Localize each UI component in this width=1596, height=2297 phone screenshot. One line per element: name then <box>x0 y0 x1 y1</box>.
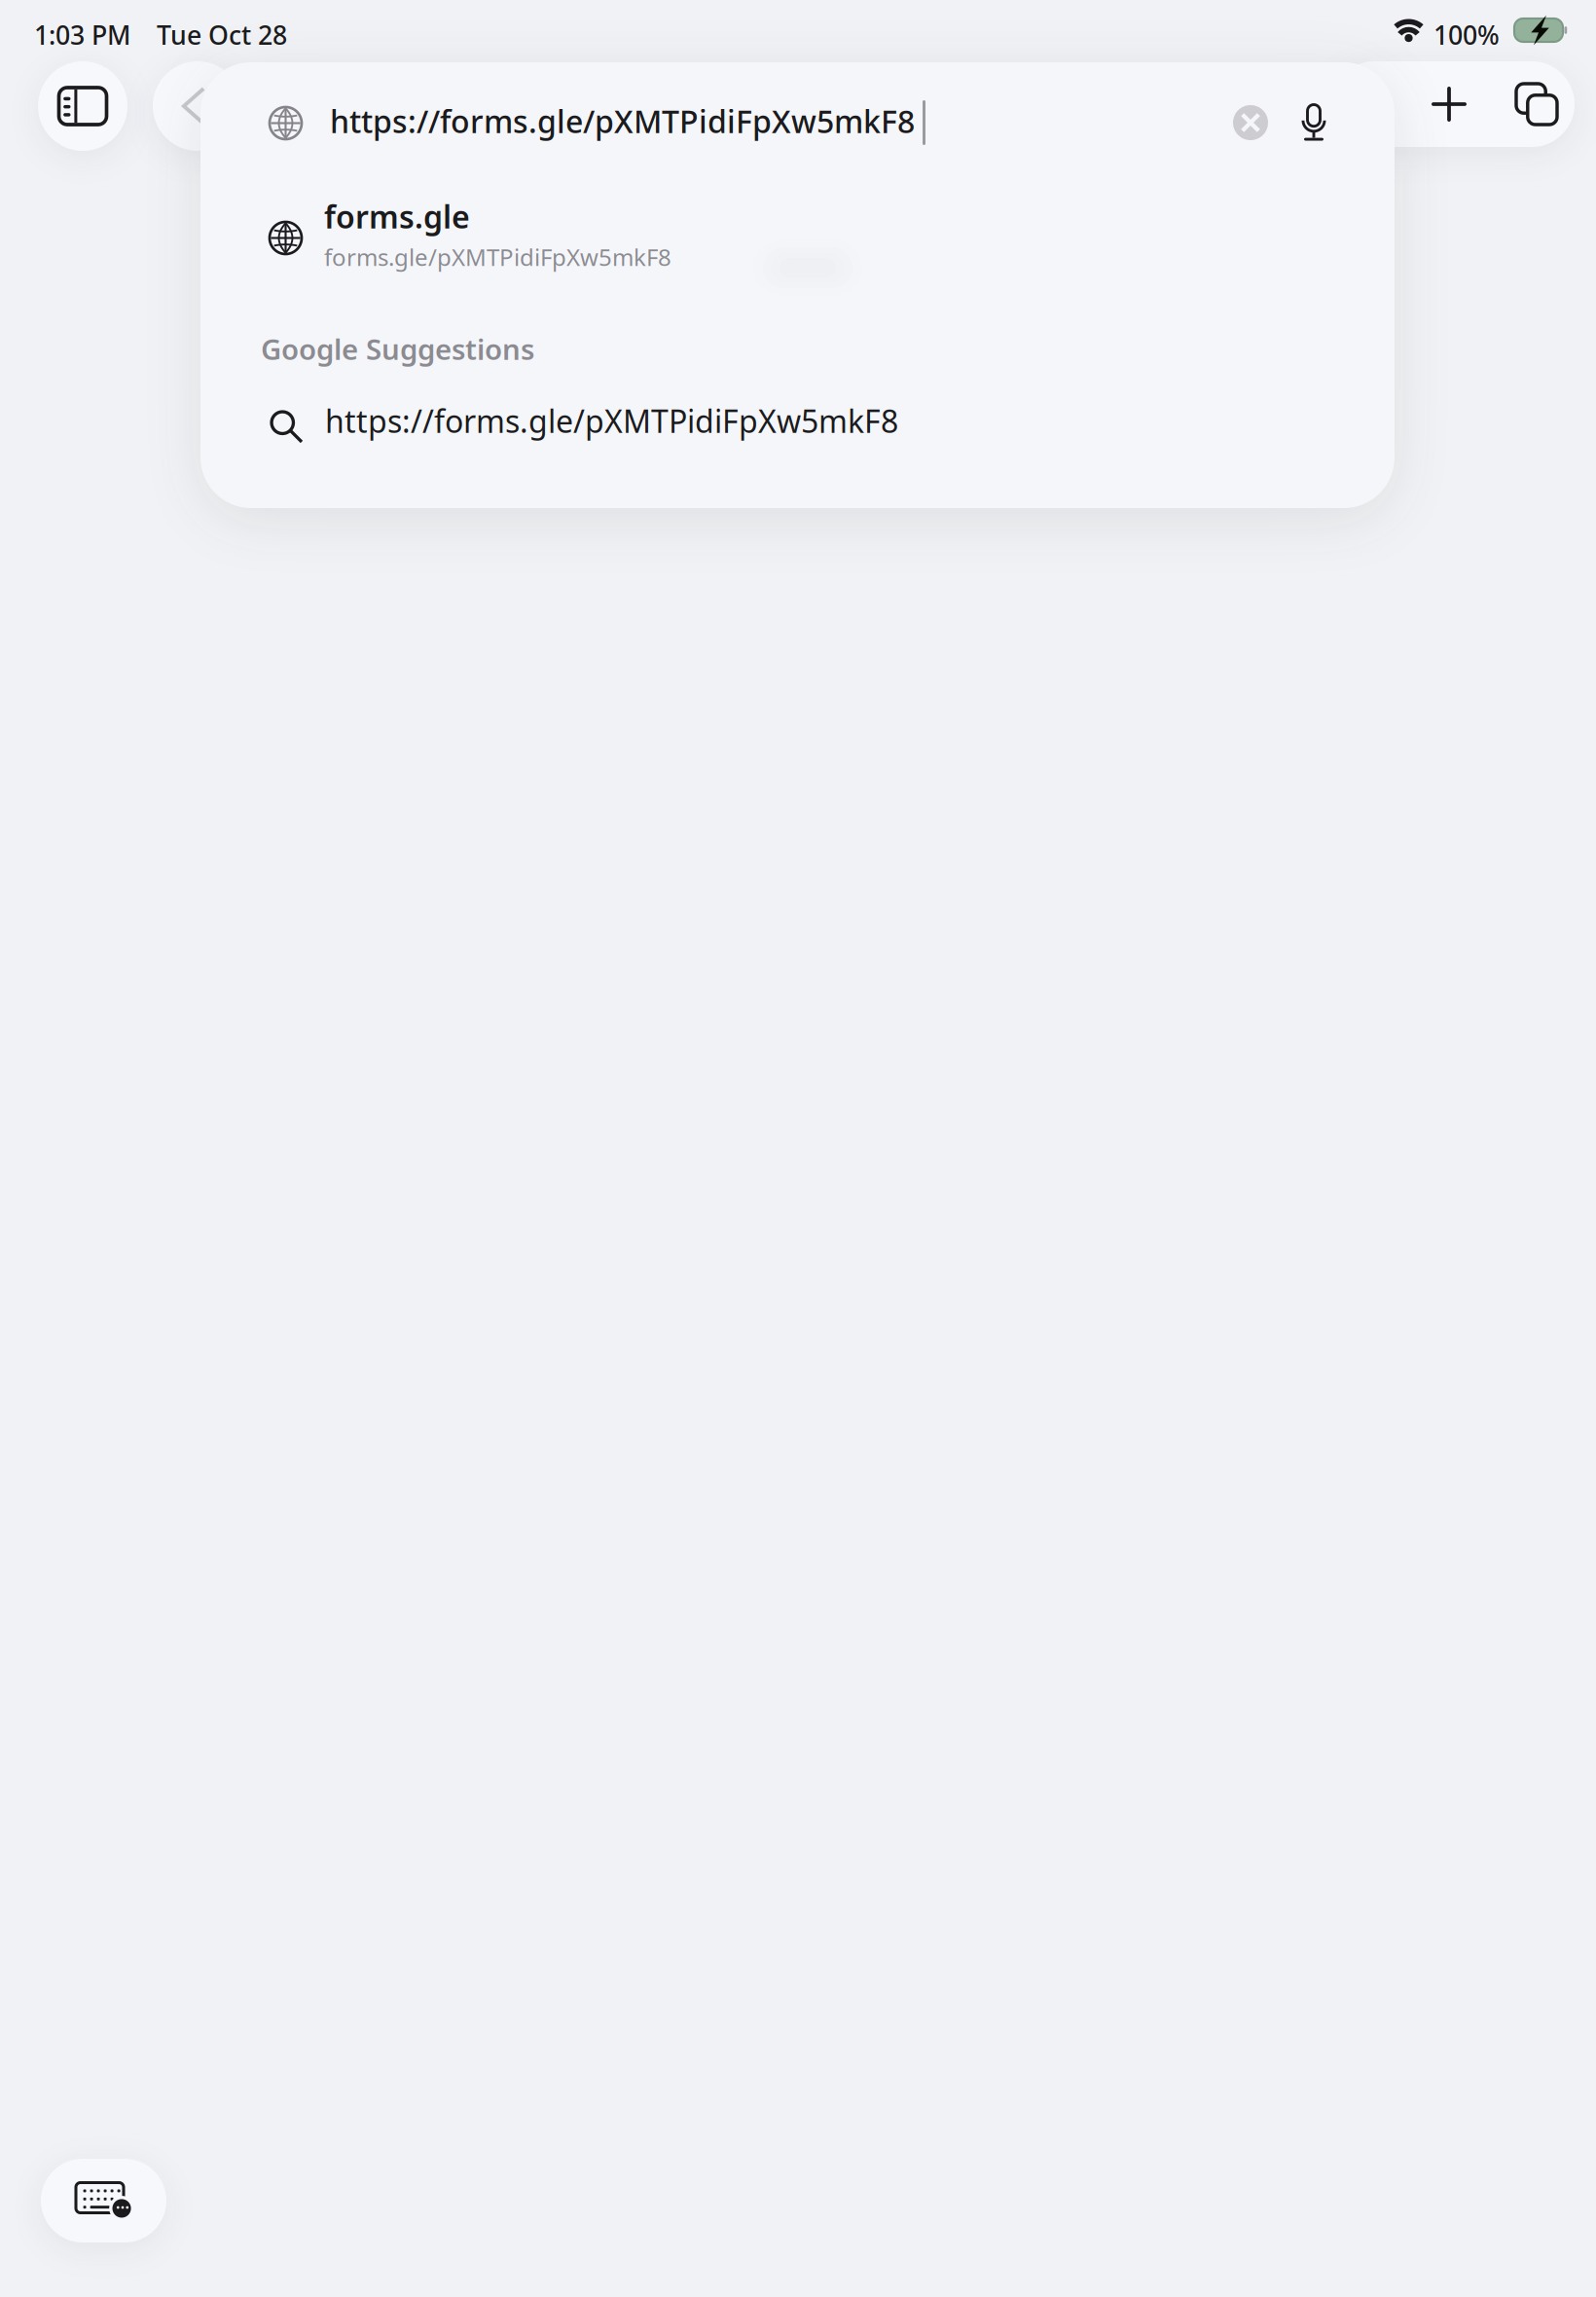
button[interactable]: Back <box>153 61 242 151</box>
button[interactable]: New Tab <box>1402 61 1496 147</box>
button[interactable]: https://forms.gle/pXMTPidiFpXw5mkF8 <box>200 374 1395 463</box>
staticText: 100% <box>1433 18 1500 52</box>
button[interactable]: forms.gle <box>200 189 1395 321</box>
staticText: Tue Oct 28 <box>157 18 287 52</box>
button[interactable]: Voice Search <box>1277 86 1351 160</box>
button[interactable]: Show Tabs <box>1490 61 1583 147</box>
button[interactable]: Dismiss Keyboard <box>41 2159 166 2242</box>
staticText: forms.gle/pXMTPidiFpXw5mkF8 <box>324 241 671 272</box>
button[interactable]: Show Sidebar <box>38 61 127 151</box>
staticText: https://forms.gle/pXMTPidiFpXw5mkF8 <box>325 400 898 441</box>
staticText: https://forms.gle/pXMTPidiFpXw5mkF8 <box>330 100 915 142</box>
staticText: forms.gle <box>324 196 470 237</box>
staticText: Google Suggestions <box>261 330 534 368</box>
staticText: 1:03 PM <box>34 18 130 52</box>
button[interactable]: Clear text <box>1214 86 1288 160</box>
